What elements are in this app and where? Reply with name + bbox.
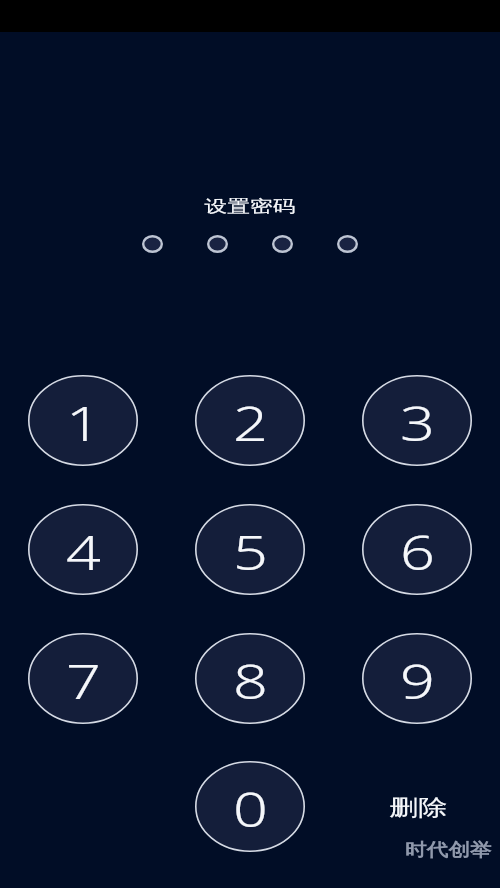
staticText: 9 <box>400 649 435 713</box>
other: Passcode digit <box>272 235 293 253</box>
button[interactable]: 5 <box>195 504 305 595</box>
staticText: 7 <box>66 649 101 713</box>
staticText: 8 <box>233 649 268 713</box>
button[interactable]: 6 <box>362 504 472 595</box>
staticText: 时代创举 <box>405 839 491 862</box>
staticText: 5 <box>233 520 268 584</box>
button[interactable]: 2 <box>195 375 305 466</box>
staticText: 删除 <box>389 794 447 822</box>
button[interactable]: 3 <box>362 375 472 466</box>
button[interactable]: 删除 <box>378 761 458 852</box>
staticText: 3 <box>400 391 435 455</box>
staticText: 4 <box>66 520 101 584</box>
button[interactable]: 4 <box>28 504 138 595</box>
other: Passcode digit <box>337 235 358 253</box>
other: Passcode digit <box>207 235 228 253</box>
button[interactable]: 1 <box>28 375 138 466</box>
staticText: 1 <box>66 391 101 455</box>
button[interactable]: 0 <box>195 761 305 852</box>
button[interactable]: 9 <box>362 633 472 724</box>
button[interactable]: 7 <box>28 633 138 724</box>
staticText: 设置密码 <box>204 196 295 217</box>
button[interactable]: 8 <box>195 633 305 724</box>
staticText: 2 <box>233 391 268 455</box>
staticText: 0 <box>233 777 268 841</box>
other: Passcode digit <box>142 235 163 253</box>
staticText: 6 <box>400 520 435 584</box>
